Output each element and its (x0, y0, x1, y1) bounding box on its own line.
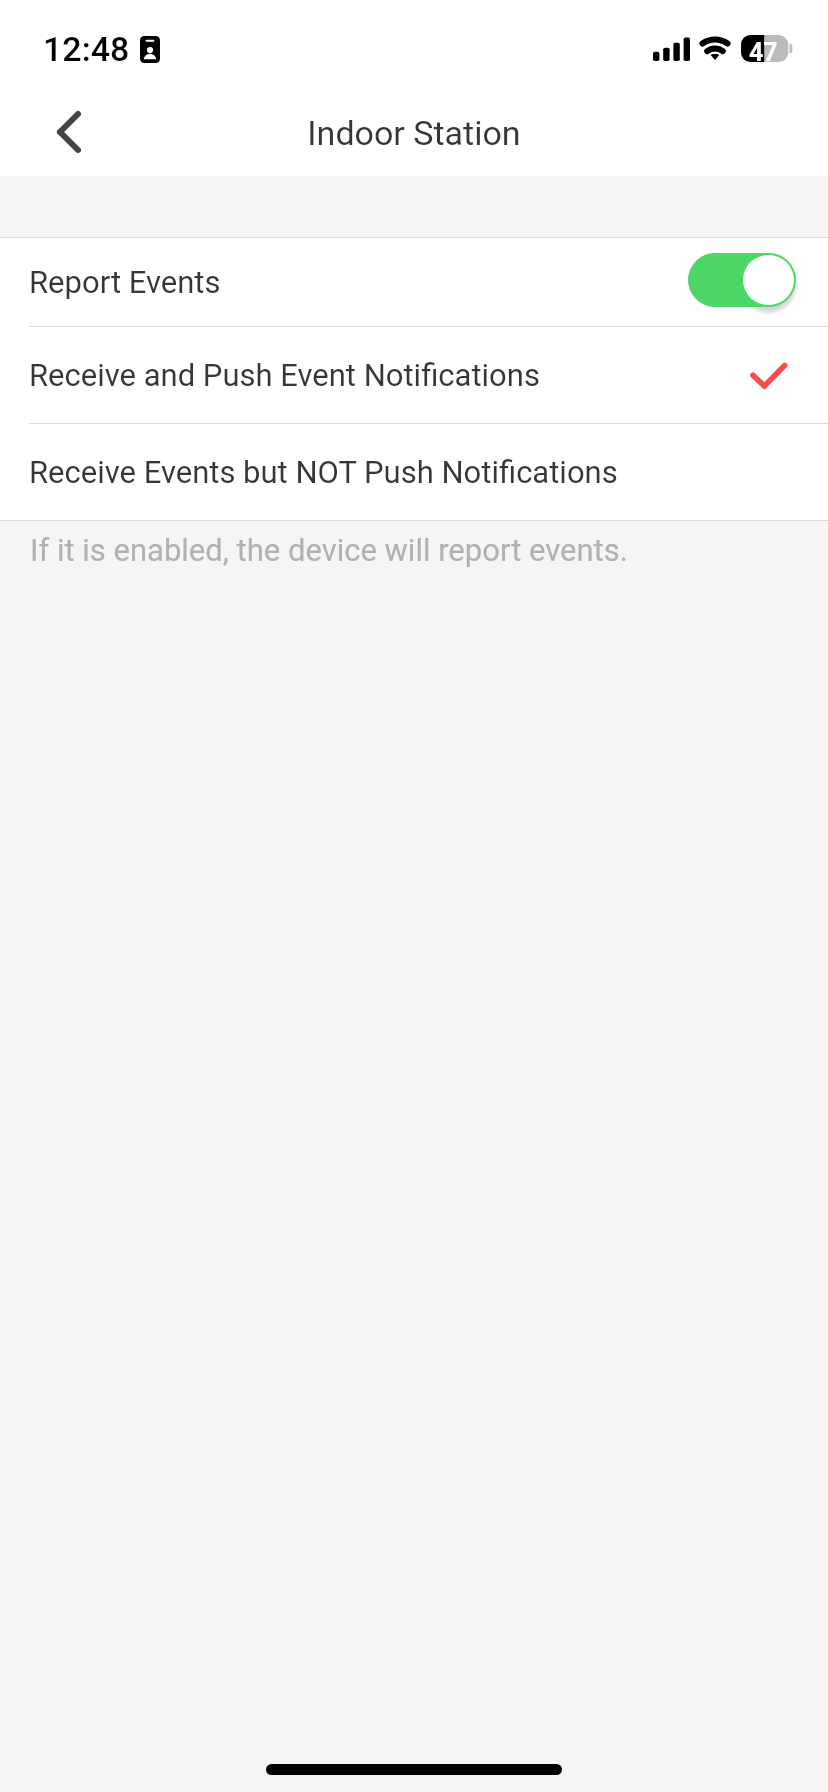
button[interactable]: Back (30, 93, 108, 171)
staticText: Indoor Station (307, 113, 521, 153)
staticText: If it is enabled, the device will report… (30, 532, 628, 568)
other: Selected (750, 362, 796, 388)
staticText: Report Events (29, 264, 221, 300)
staticText: 12:48 (43, 29, 130, 69)
button[interactable]: Receive Events but NOT Push Notification… (0, 424, 828, 520)
button[interactable]: Report Events (0, 238, 828, 326)
button[interactable]: Receive and Push Event Notifications (0, 327, 828, 423)
staticText: Receive and Push Event Notifications (29, 357, 540, 393)
staticText: Receive Events but NOT Push Notification… (29, 454, 618, 490)
button[interactable]: Report Events toggle (688, 253, 800, 313)
staticText: 47 (749, 38, 778, 65)
